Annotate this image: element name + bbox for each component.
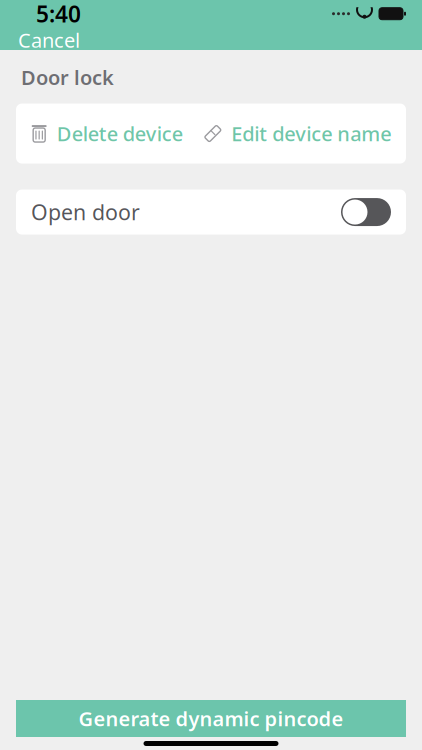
button[interactable]: Edit device name bbox=[197, 112, 397, 155]
staticText: 5:40 bbox=[36, 0, 81, 29]
staticText: Door lock bbox=[21, 64, 114, 91]
button[interactable]: Open door bbox=[16, 190, 406, 235]
button[interactable]: Generate dynamic pincode bbox=[16, 700, 406, 737]
staticText: Delete device bbox=[57, 120, 183, 147]
staticText: Generate dynamic pincode bbox=[78, 705, 343, 732]
staticText: Cancel bbox=[18, 27, 80, 53]
button[interactable]: Delete device bbox=[25, 112, 189, 155]
button[interactable]: Cancel bbox=[0, 26, 90, 54]
staticText: Edit device name bbox=[231, 120, 391, 147]
staticText: Open door bbox=[31, 198, 140, 226]
